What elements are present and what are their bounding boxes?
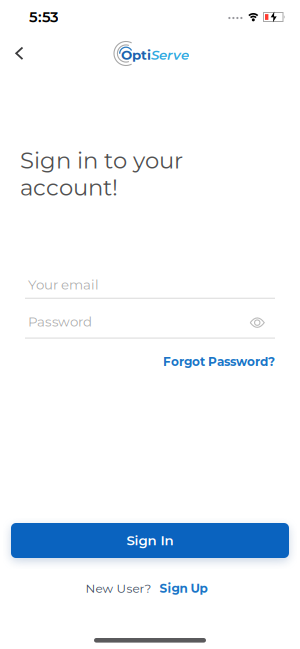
button[interactable]: Show password — [249, 315, 275, 329]
staticText: Your email — [28, 277, 99, 293]
staticText: Serve — [151, 47, 189, 63]
button[interactable]: Back — [0, 32, 40, 75]
staticText: Opti — [121, 47, 151, 63]
button[interactable]: Forgot Password? — [163, 355, 275, 369]
staticText: 5:53 — [29, 8, 59, 26]
button[interactable]: Sign Up — [159, 581, 207, 596]
staticText: Sign In — [126, 533, 173, 548]
staticText: Sign in to your — [20, 147, 183, 174]
staticText: account! — [20, 174, 118, 201]
staticText: New User? — [85, 581, 151, 596]
button[interactable]: Sign In — [11, 523, 289, 558]
staticText: Forgot Password? — [163, 355, 275, 369]
staticText: Password — [28, 314, 92, 329]
staticText: Sign Up — [159, 581, 207, 596]
